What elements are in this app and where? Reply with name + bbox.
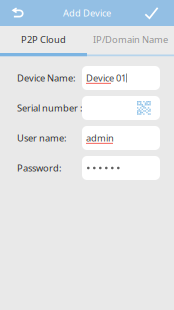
staticText: Add Device (63, 7, 111, 19)
button[interactable]: P2P Cloud (0, 26, 87, 53)
staticText: Device Name: (17, 72, 76, 84)
staticText: Password: (17, 162, 62, 174)
button[interactable]: Back (0, 0, 36, 26)
staticText: 01 (114, 72, 126, 84)
button[interactable]: IP/Domain Name (87, 26, 174, 53)
staticText: IP/Domain Name (93, 33, 168, 46)
button[interactable]: Save (138, 0, 174, 26)
staticText: Device (86, 72, 114, 84)
staticText: P2P Cloud (21, 33, 66, 46)
staticText: admin (86, 132, 114, 144)
staticText: User name: (17, 132, 67, 144)
staticText: Serial number : (17, 102, 83, 114)
